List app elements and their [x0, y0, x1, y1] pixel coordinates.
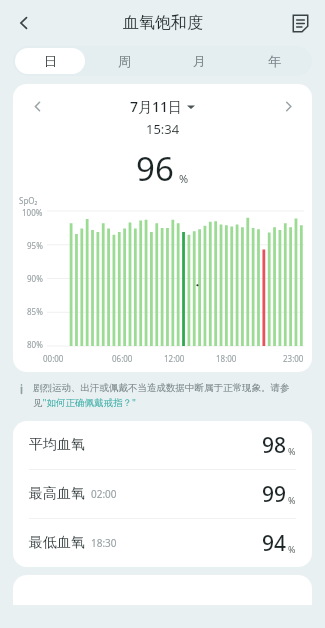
button[interactable]: 年: [239, 48, 310, 74]
staticText: 80%: [27, 339, 43, 350]
staticText: 平均血氧: [29, 436, 85, 454]
staticText: %: [288, 445, 296, 457]
staticText: 血氧饱和度: [123, 13, 203, 33]
staticText: 98: [262, 431, 287, 460]
staticText: 日: [44, 53, 57, 69]
staticText: 12:00: [164, 353, 185, 364]
button[interactable]: 剧烈运动、出汗或佩戴不当造成数据中断属于正常现象。请参见"如何正确佩戴戒指？": [15, 382, 310, 409]
button[interactable]: Records: [283, 6, 317, 40]
button[interactable]: 月: [164, 48, 235, 74]
staticText: %: [179, 171, 189, 186]
staticText: 剧烈运动、出汗或佩戴不当造成数据中断属于正常现象。请参见"如何正确佩戴戒指？": [33, 382, 310, 409]
staticText: 90%: [27, 273, 43, 284]
staticText: 06:00: [112, 353, 133, 364]
staticText: 96: [136, 146, 174, 191]
button[interactable]: 最高血氧: [13, 470, 312, 518]
staticText: 周: [118, 53, 131, 69]
button[interactable]: 7月11日: [49, 97, 276, 116]
button[interactable]: 周: [89, 48, 160, 74]
staticText: 100%: [22, 207, 43, 218]
staticText: 最低血氧: [29, 534, 85, 552]
staticText: 15:34: [146, 120, 180, 138]
button[interactable]: 日: [15, 48, 85, 74]
staticText: SpO₂: [19, 195, 38, 206]
staticText: 23:00: [283, 353, 304, 364]
button[interactable]: Next day: [276, 94, 300, 118]
button[interactable]: Previous day: [25, 94, 49, 118]
button[interactable]: Back: [6, 5, 42, 41]
button[interactable]: 最低血氧: [13, 519, 312, 567]
staticText: %: [288, 494, 296, 506]
staticText: 85%: [27, 306, 43, 317]
staticText: 7月11日: [130, 97, 183, 116]
staticText: %: [288, 543, 296, 555]
staticText: 99: [262, 480, 287, 509]
staticText: 月: [193, 53, 206, 69]
staticText: 95%: [27, 240, 43, 251]
staticText: 00:00: [43, 353, 64, 364]
staticText: 年: [268, 53, 281, 69]
button[interactable]: 平均血氧: [13, 421, 312, 469]
staticText: 94: [262, 529, 287, 558]
staticText: 最高血氧: [29, 485, 85, 503]
staticText: 02:00: [91, 487, 117, 501]
staticText: 18:00: [216, 353, 237, 364]
staticText: 18:30: [91, 536, 117, 550]
